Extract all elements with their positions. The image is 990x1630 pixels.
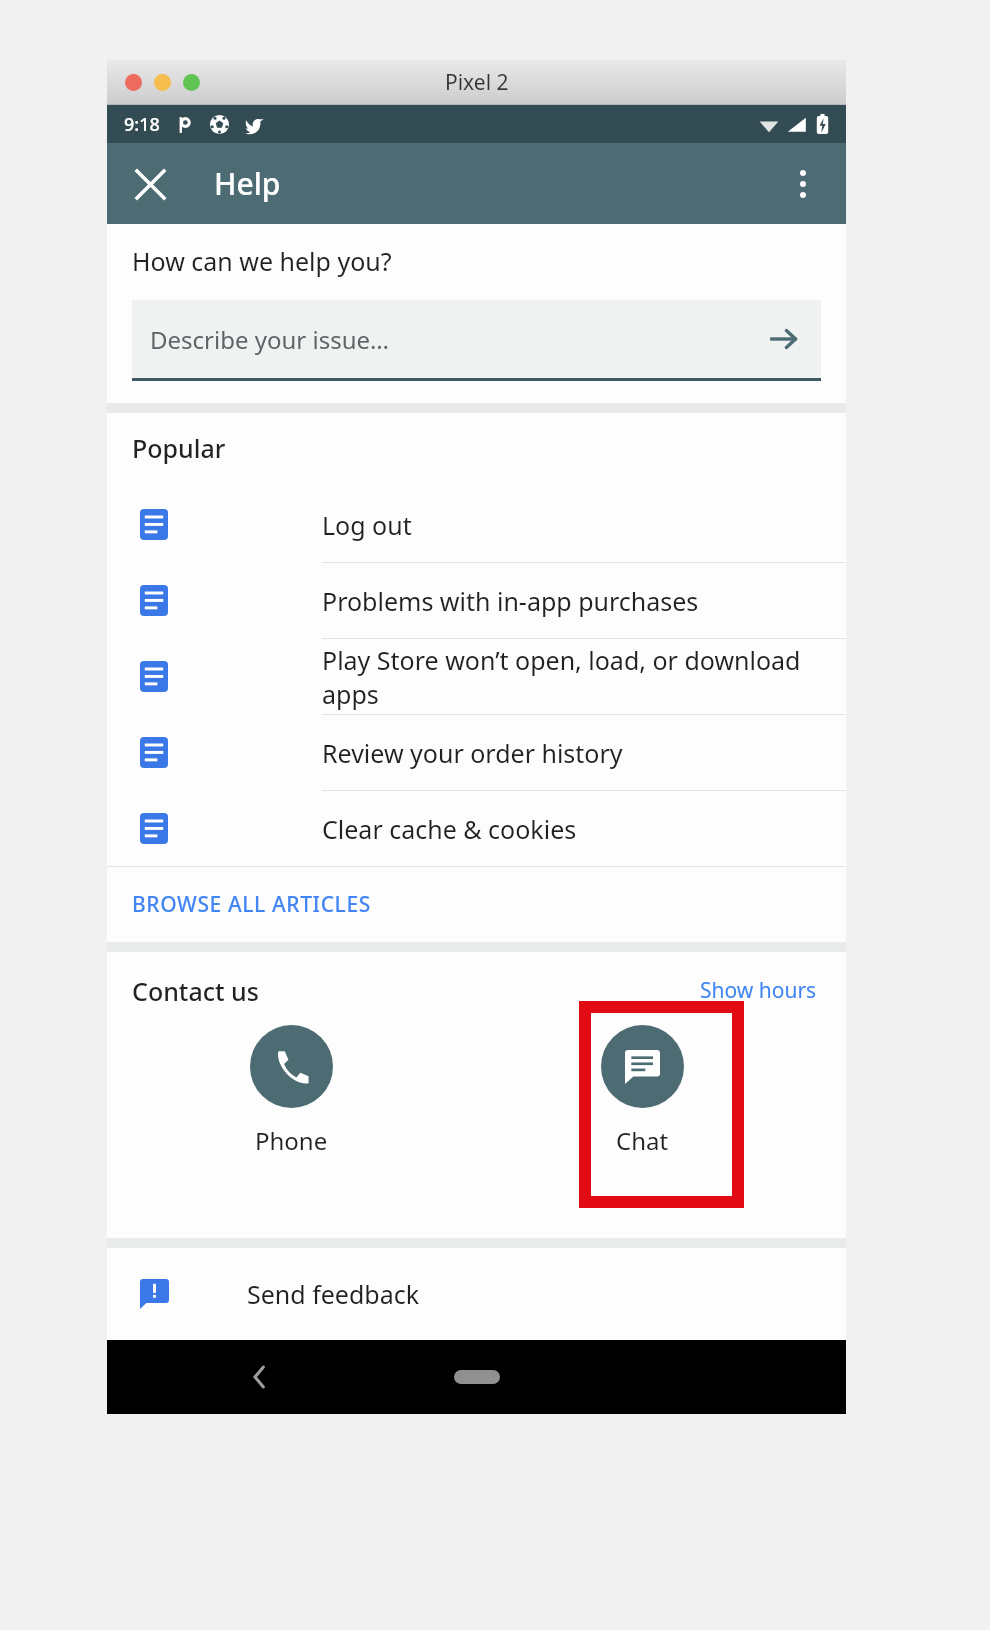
button[interactable]: Send feedback: [107, 1248, 846, 1340]
button[interactable]: Play Store won’t open, load, or download…: [107, 639, 846, 714]
staticText: How can we help you?: [132, 244, 392, 278]
button[interactable]: BROWSE ALL ARTICLES: [107, 867, 846, 942]
button[interactable]: Back: [235, 1353, 283, 1401]
button[interactable]: Chat: [585, 1025, 700, 1157]
staticText: Help: [214, 163, 281, 204]
other: Phone: [274, 1049, 310, 1085]
staticText: Describe your issue…: [150, 323, 389, 356]
button[interactable]: Close: [121, 155, 179, 213]
button[interactable]: Log out: [107, 487, 846, 562]
staticText: Review your order history: [322, 736, 623, 770]
button[interactable]: More options: [774, 155, 832, 213]
button[interactable]: Phone: [234, 1025, 349, 1157]
button[interactable]: Search: [761, 317, 805, 361]
button[interactable]: Review your order history: [107, 715, 846, 790]
staticText: Show hours: [700, 976, 817, 1005]
staticText: Problems with in-app purchases: [322, 584, 699, 618]
staticText: Contact us: [132, 974, 259, 1008]
staticText: Chat: [616, 1124, 669, 1157]
button[interactable]: Problems with in-app purchases: [107, 563, 846, 638]
button[interactable]: Describe your issue…: [132, 300, 821, 378]
button[interactable]: Clear cache & cookies: [107, 791, 846, 866]
staticText: 9:18: [124, 112, 160, 137]
staticText: Send feedback: [247, 1277, 420, 1311]
button[interactable]: Home: [454, 1370, 500, 1384]
staticText: Popular: [132, 431, 226, 465]
button[interactable]: Show hours: [696, 972, 821, 1009]
staticText: Clear cache & cookies: [322, 812, 577, 846]
staticText: BROWSE ALL ARTICLES: [132, 890, 371, 919]
staticText: Log out: [322, 508, 412, 542]
staticText: Pixel 2: [445, 68, 509, 97]
staticText: Phone: [255, 1124, 328, 1157]
other: Chat: [625, 1050, 660, 1084]
staticText: Play Store won’t open, load, or download…: [322, 643, 846, 711]
